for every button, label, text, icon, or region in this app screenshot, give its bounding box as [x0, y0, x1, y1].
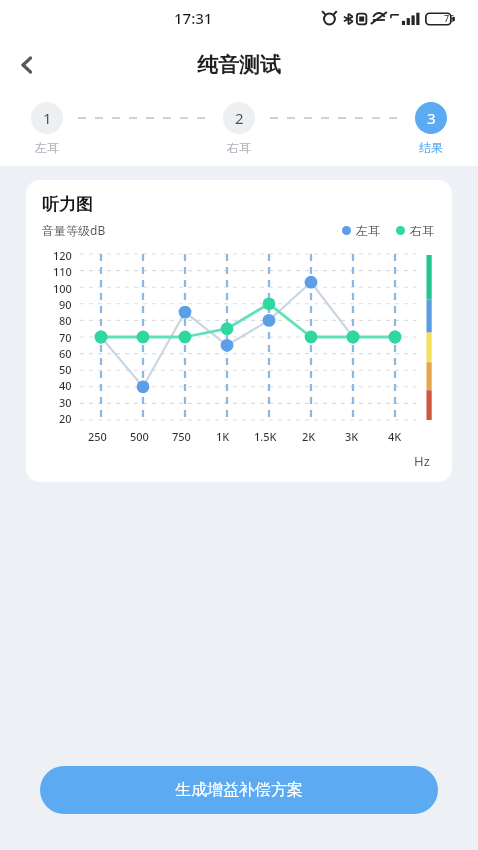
staticText: 110	[53, 264, 72, 279]
staticText: 3	[427, 108, 436, 128]
staticText: 1	[43, 108, 52, 128]
staticText: 90	[59, 297, 72, 312]
staticText: 右耳	[410, 223, 434, 238]
staticText: 17:31	[174, 8, 213, 28]
staticText: 250	[88, 429, 107, 444]
staticText: 60	[59, 346, 72, 361]
staticText: 2K	[302, 429, 316, 444]
staticText: 听力图	[42, 194, 93, 215]
staticText: 40	[59, 378, 72, 393]
button[interactable]: 1	[24, 94, 70, 155]
button[interactable]: 左耳	[342, 223, 380, 238]
staticText: 70	[59, 330, 72, 345]
button[interactable]: 2	[216, 94, 262, 155]
button[interactable]: 生成增益补偿方案	[40, 766, 438, 814]
staticText: 音量等级dB	[42, 222, 106, 238]
staticText: Hz	[414, 452, 430, 470]
staticText: 100	[53, 281, 72, 296]
staticText: 右耳	[227, 140, 251, 155]
staticText: 75	[444, 12, 455, 24]
button[interactable]: 右耳	[396, 223, 434, 238]
staticText: 2	[235, 108, 244, 128]
staticText: 结果	[419, 140, 443, 155]
button[interactable]: 3	[408, 94, 454, 155]
staticText: 120	[53, 248, 72, 263]
button[interactable]: Back	[4, 42, 50, 88]
staticText: 80	[59, 313, 72, 328]
staticText: 3K	[345, 429, 359, 444]
staticText: 20	[59, 411, 72, 426]
staticText: 750	[172, 429, 191, 444]
staticText: 500	[130, 429, 149, 444]
staticText: 1K	[216, 429, 230, 444]
staticText: 1.5K	[254, 429, 277, 444]
staticText: 50	[59, 362, 72, 377]
staticText: 30	[59, 395, 72, 410]
staticText: 左耳	[35, 140, 59, 155]
staticText: 4K	[388, 429, 402, 444]
staticText: 生成增益补偿方案	[175, 780, 303, 800]
staticText: 左耳	[356, 223, 380, 238]
staticText: 纯音测试	[197, 52, 281, 78]
